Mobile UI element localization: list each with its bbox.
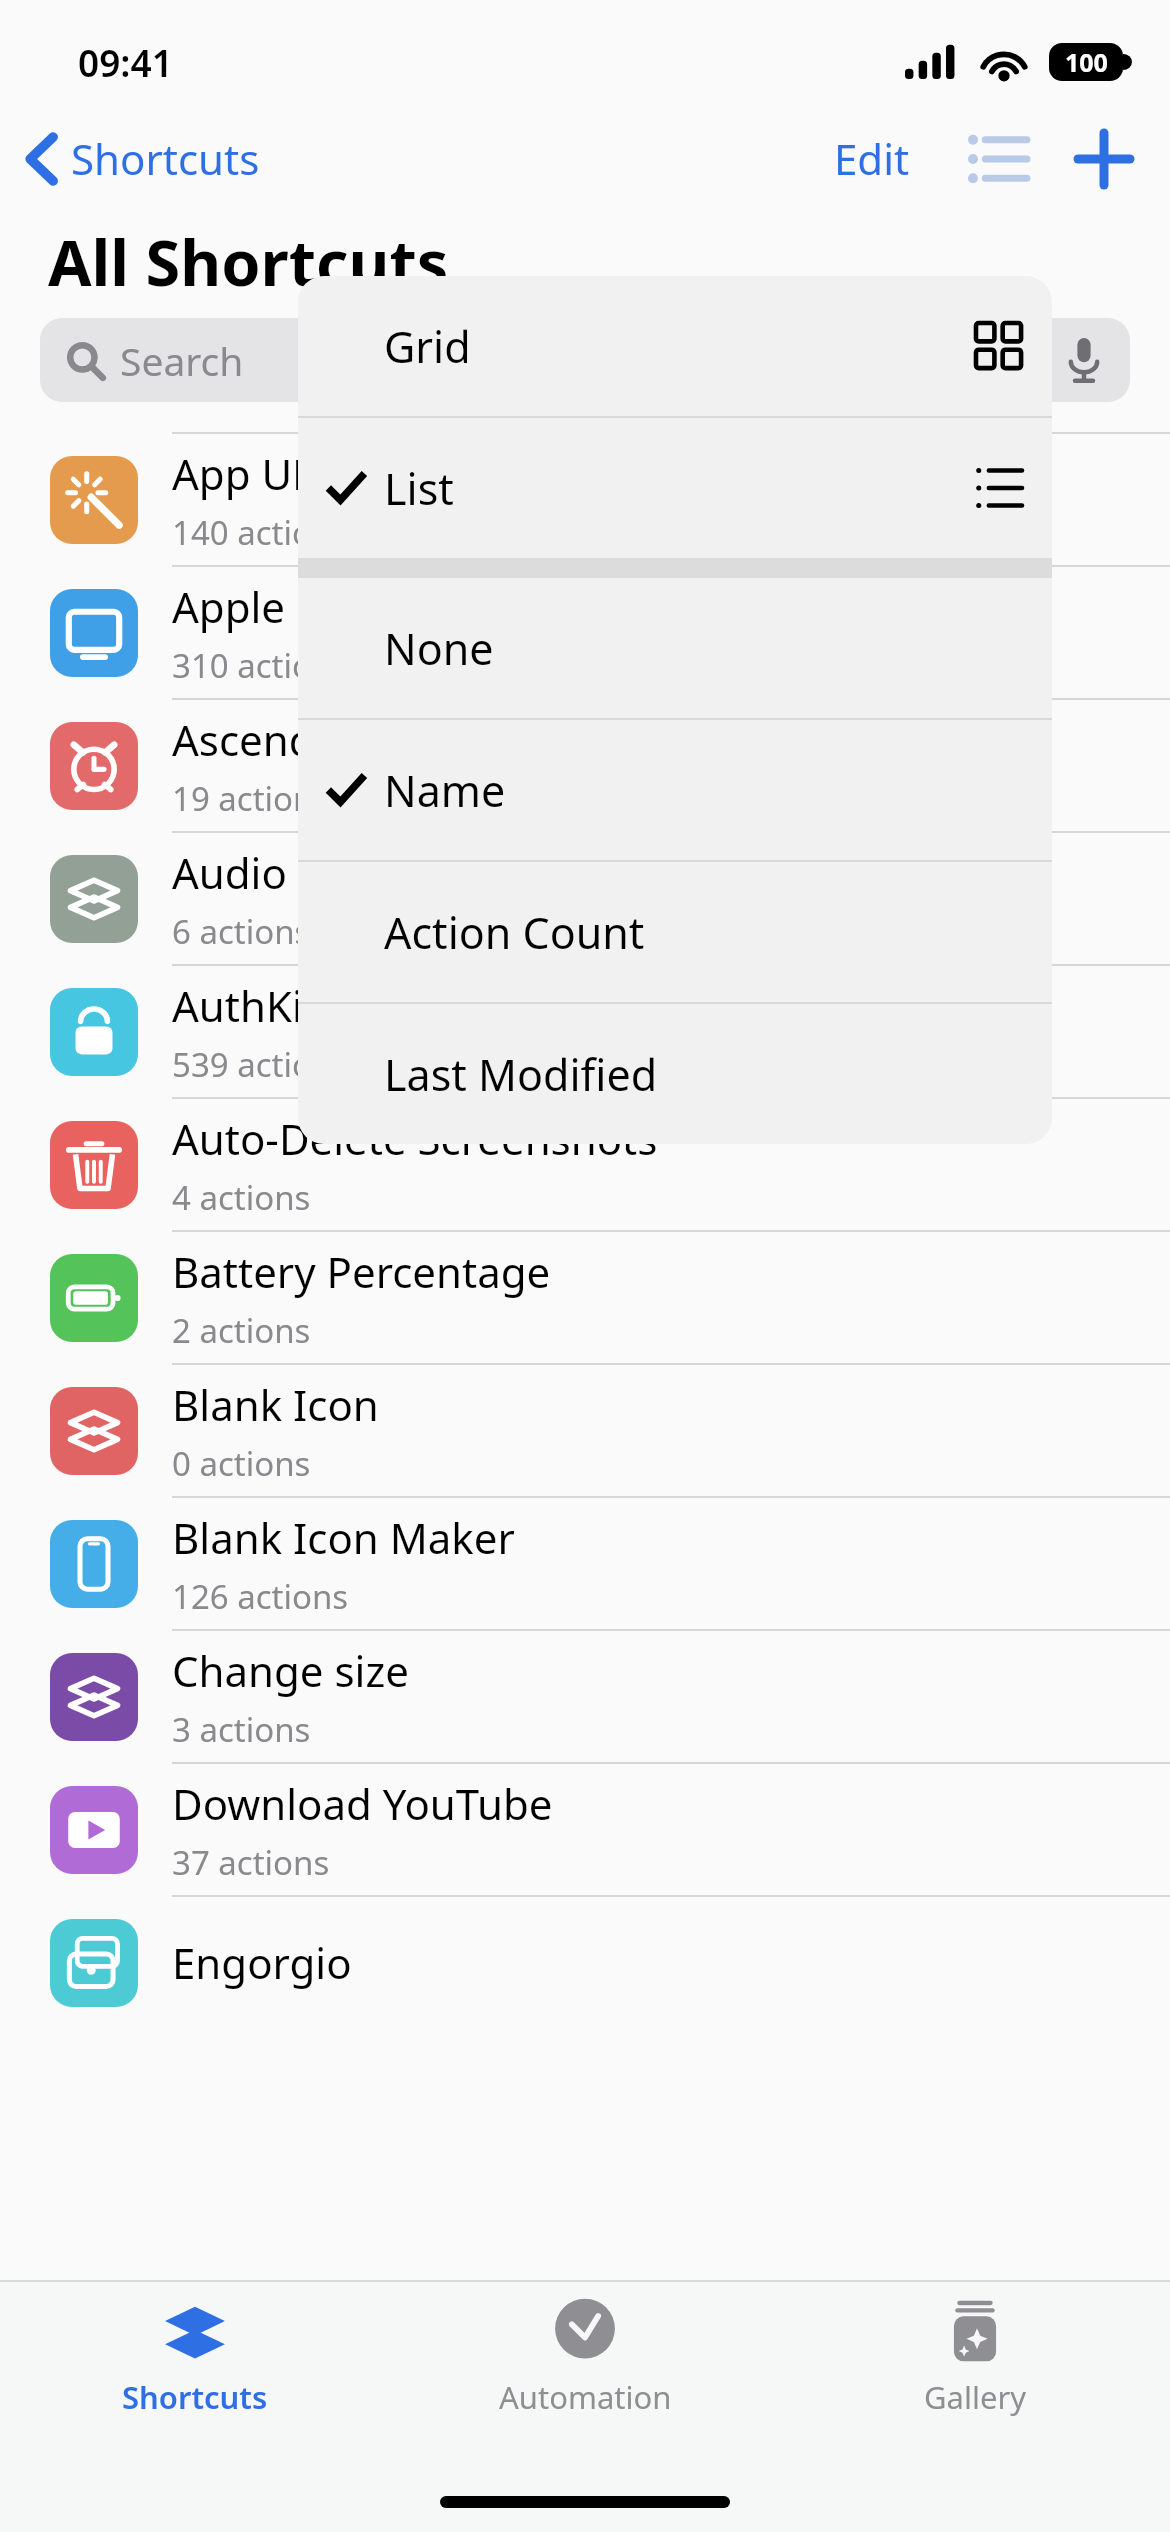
button[interactable]: Automation — [390, 2282, 780, 2434]
staticText: Blank Icon Maker — [172, 1509, 515, 1566]
staticText: 140 actions — [172, 510, 349, 555]
staticText: 37 actions — [172, 1840, 330, 1885]
button[interactable]: List — [298, 418, 1052, 558]
button[interactable]: Gallery — [780, 2282, 1170, 2434]
button[interactable]: Shortcuts — [20, 122, 266, 195]
staticText: Battery Percentage — [172, 1243, 551, 1300]
staticText: Auto-Delete Screenshots — [172, 1110, 658, 1167]
staticText: Blank Icon — [172, 1376, 379, 1433]
button[interactable]: Apple Display — [0, 567, 1170, 698]
staticText: Name — [384, 761, 506, 820]
staticText: 100 — [1065, 45, 1108, 79]
staticText: Automation — [499, 2376, 672, 2418]
button[interactable]: Blank Icon — [0, 1365, 1170, 1496]
staticText: 0 actions — [172, 1441, 311, 1486]
staticText: All Shortcuts — [48, 219, 449, 305]
staticText: 3 actions — [172, 1707, 311, 1752]
staticText: List — [384, 459, 454, 518]
button[interactable]: Download YouTube — [0, 1764, 1170, 1895]
button[interactable]: App UPC — [0, 434, 1170, 565]
button[interactable]: Ascending Song Alarm — [0, 700, 1170, 831]
staticText: 126 actions — [172, 1574, 349, 1619]
staticText: Download YouTube — [172, 1775, 553, 1832]
staticText: AuthKit — [172, 977, 318, 1034]
button[interactable]: Last Modified — [298, 1004, 1052, 1144]
button[interactable]: Create shortcut — [1066, 121, 1142, 197]
staticText: Last Modified — [384, 1045, 658, 1104]
staticText: 2 actions — [172, 1308, 311, 1353]
staticText: Apple Display — [172, 578, 440, 635]
button[interactable]: Search — [40, 318, 1130, 402]
staticText: Shortcuts — [122, 2376, 268, 2418]
button[interactable]: Shortcuts — [0, 2282, 390, 2434]
button[interactable]: Auto-Delete Screenshots — [0, 1099, 1170, 1230]
staticText: Audio To M4r — [172, 844, 434, 901]
staticText: None — [384, 619, 494, 678]
button[interactable]: View options — [960, 121, 1036, 197]
button[interactable]: Edit — [824, 118, 920, 199]
staticText: 19 actions — [172, 776, 330, 821]
staticText: Gallery — [924, 2376, 1027, 2418]
button[interactable]: Grid — [298, 276, 1052, 416]
staticText: Shortcuts — [71, 130, 260, 187]
staticText: 539 actions — [172, 1042, 349, 1087]
button[interactable]: Name — [298, 720, 1052, 860]
staticText: App UPC — [172, 445, 345, 502]
staticText: Action Count — [384, 903, 645, 962]
staticText: 6 actions — [172, 909, 311, 954]
button[interactable]: Blank Icon Maker — [0, 1498, 1170, 1629]
button[interactable]: Action Count — [298, 862, 1052, 1002]
staticText: 310 actions — [172, 643, 349, 688]
button[interactable]: Battery Percentage — [0, 1232, 1170, 1363]
button[interactable]: Change size — [0, 1631, 1170, 1762]
staticText: Search — [120, 334, 244, 387]
button[interactable]: AuthKit — [0, 966, 1170, 1097]
staticText: Change size — [172, 1642, 409, 1699]
staticText: Grid — [384, 317, 471, 376]
button[interactable]: Engorgio — [0, 1897, 1170, 2028]
button[interactable]: Dictate — [1058, 334, 1110, 386]
staticText: Ascending Song Alarm — [172, 711, 618, 768]
button[interactable]: Audio To M4r — [0, 833, 1170, 964]
button[interactable]: None — [298, 578, 1052, 718]
staticText: Engorgio — [172, 1934, 352, 1991]
staticText: 09:41 — [78, 37, 173, 87]
staticText: 4 actions — [172, 1175, 311, 1220]
